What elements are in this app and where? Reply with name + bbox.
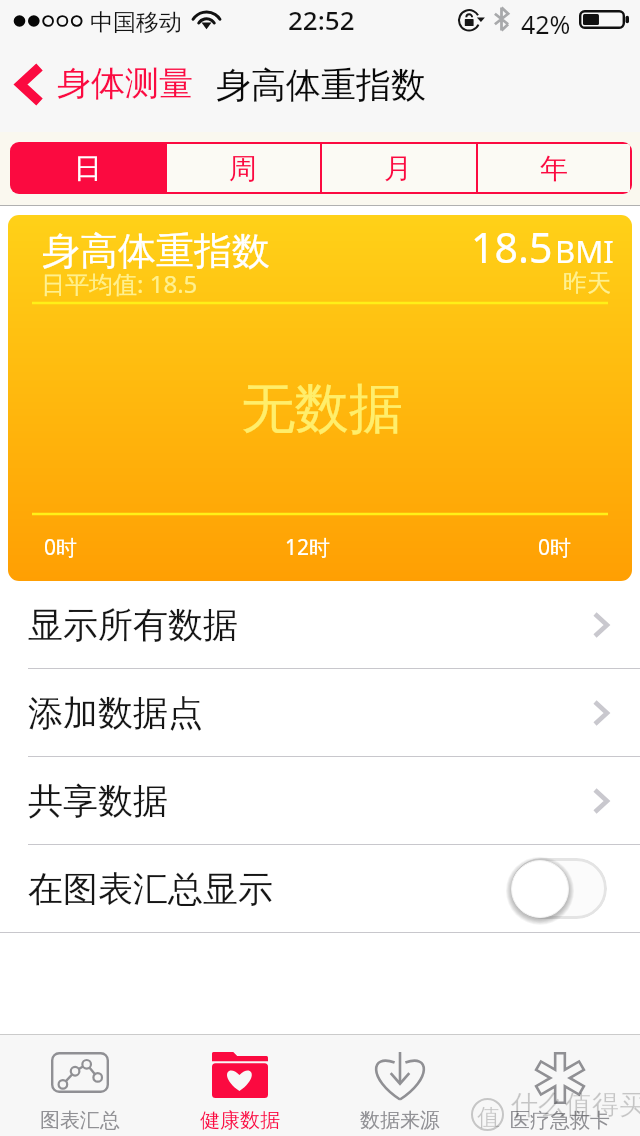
staticText: BMI: [555, 230, 614, 272]
staticText: 身高体重指数: [216, 63, 426, 107]
button[interactable]: 年: [476, 142, 632, 194]
staticText: 日: [74, 151, 102, 186]
button[interactable]: 周: [165, 142, 320, 194]
button[interactable]: 日: [10, 142, 165, 194]
button[interactable]: 数据来源: [320, 1034, 480, 1136]
staticText: 添加数据点: [28, 691, 203, 735]
staticText: 22:52: [288, 2, 355, 37]
button[interactable]: 健康数据: [160, 1034, 320, 1136]
staticText: 显示所有数据: [28, 603, 238, 647]
button[interactable]: 医疗急救卡: [480, 1034, 640, 1136]
staticText: 数据来源: [360, 1108, 440, 1133]
staticText: 中国移动: [90, 8, 182, 37]
staticText: 医疗急救卡: [510, 1108, 610, 1133]
button[interactable]: 显示所有数据: [0, 581, 640, 668]
staticText: 42%: [521, 7, 571, 41]
button[interactable]: 添加数据点: [0, 669, 640, 756]
staticText: 0时: [44, 533, 78, 562]
staticText: 身高体重指数: [42, 227, 270, 275]
button[interactable]: 返回 身体测量: [0, 52, 201, 121]
staticText: 0时: [538, 533, 572, 562]
staticText: 在图表汇总显示: [28, 867, 273, 911]
staticText: 12时: [285, 533, 331, 562]
staticText: 健康数据: [200, 1108, 280, 1133]
button[interactable]: 图表汇总: [0, 1034, 160, 1136]
staticText: 月: [384, 151, 412, 186]
button[interactable]: 共享数据: [0, 757, 640, 844]
staticText: 18.5: [471, 219, 553, 275]
button[interactable]: 月: [320, 142, 476, 194]
staticText: 共享数据: [28, 779, 168, 823]
button[interactable]: 在图表汇总显示: [0, 845, 640, 932]
staticText: 昨天: [563, 268, 611, 298]
staticText: 什么值得买: [511, 1088, 640, 1122]
staticText: 年: [540, 151, 568, 186]
staticText: 身体测量: [57, 62, 193, 105]
staticText: 值: [477, 1103, 500, 1132]
staticText: 日平均值: 18.5: [41, 267, 198, 300]
staticText: 无数据: [241, 375, 403, 443]
staticText: 周: [229, 151, 257, 186]
staticText: 图表汇总: [40, 1108, 120, 1133]
